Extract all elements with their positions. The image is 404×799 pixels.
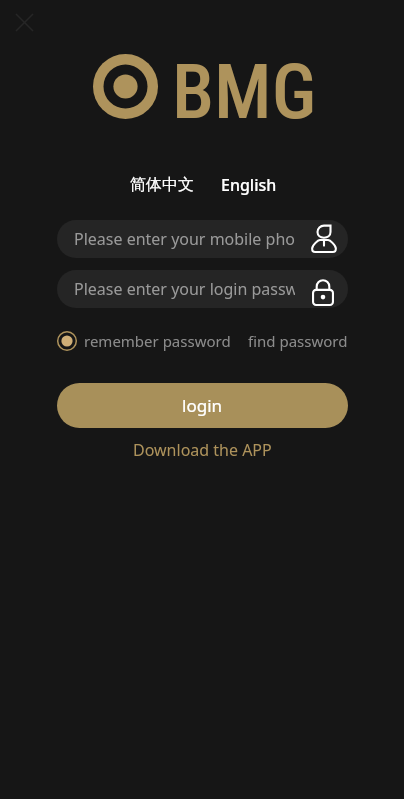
staticText: English [221, 174, 277, 196]
button[interactable]: login [57, 383, 348, 428]
staticText: login [182, 394, 223, 417]
button[interactable]: Please enter your mobile phone number [57, 220, 348, 258]
button[interactable]: Close [16, 14, 33, 31]
button[interactable]: English [221, 174, 277, 196]
button[interactable]: Please enter your login password [57, 270, 348, 308]
staticText: remember password [84, 331, 231, 351]
staticText: Please enter your mobile phone number [74, 228, 295, 250]
button[interactable]: 简体中文 [130, 175, 194, 195]
button[interactable]: remember password [57, 331, 231, 351]
staticText: 简体中文 [130, 175, 194, 195]
button[interactable]: Download the APP [133, 439, 272, 461]
staticText: Please enter your login password [74, 278, 295, 300]
staticText: BMG [172, 47, 317, 136]
staticText: find password [248, 331, 348, 351]
button[interactable]: find password [248, 331, 348, 351]
staticText: Download the APP [133, 439, 272, 461]
